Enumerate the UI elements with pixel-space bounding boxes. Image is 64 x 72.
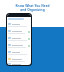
button[interactable] xyxy=(8,21,30,28)
button[interactable]: Search xyxy=(8,18,24,20)
button[interactable] xyxy=(8,35,30,42)
staticText: Know What You Need xyxy=(15,4,50,8)
button[interactable] xyxy=(8,63,30,65)
staticText: and Organizing xyxy=(20,8,45,12)
button[interactable] xyxy=(8,49,30,56)
button[interactable] xyxy=(8,28,30,35)
button[interactable] xyxy=(8,42,30,49)
button[interactable] xyxy=(8,56,30,63)
